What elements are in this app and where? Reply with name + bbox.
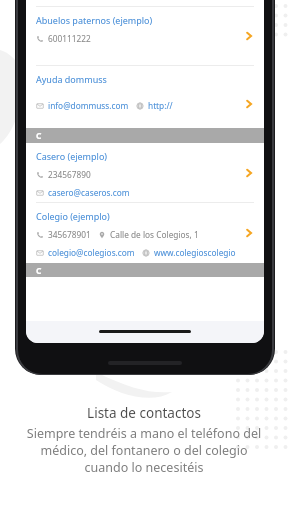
- staticText: Abuelos paternos (ejemplo): [36, 14, 153, 26]
- staticText: Siempre tendréis a mano el teléfono del …: [8, 425, 280, 476]
- staticText: Lista de contactos: [8, 404, 280, 422]
- staticText: www.colegioscolegios.com: [154, 247, 238, 258]
- staticText: info@dommuss.com: [48, 100, 129, 111]
- button[interactable]: Abuelos paternos (ejemplo): [26, 7, 264, 65]
- staticText: Casero (ejemplo): [36, 150, 108, 162]
- staticText: casero@caseros.com: [48, 187, 130, 198]
- button[interactable]: Abrir contacto: [242, 29, 256, 43]
- staticText: 600111222: [48, 33, 91, 44]
- staticText: C: [36, 265, 42, 277]
- button[interactable]: Colegio (ejemplo): [26, 203, 264, 263]
- staticText: C: [36, 130, 42, 142]
- staticText: Ayuda dommuss: [36, 73, 107, 85]
- button[interactable]: Abrir contacto: [242, 97, 256, 111]
- staticText: colegio@colegios.com: [48, 247, 135, 258]
- button[interactable]: Ayuda dommuss: [26, 66, 264, 128]
- button[interactable]: Abrir contacto: [242, 166, 256, 180]
- staticText: http://www.dommuss.com/ayu: [148, 100, 238, 111]
- button[interactable]: Abrir contacto: [242, 226, 256, 240]
- staticText: 345678901: [48, 229, 91, 240]
- staticText: Calle de los Colegios, 1: [110, 229, 199, 240]
- staticText: 234567890: [48, 169, 91, 180]
- staticText: Colegio (ejemplo): [36, 210, 110, 222]
- button[interactable]: Casero (ejemplo): [26, 143, 264, 202]
